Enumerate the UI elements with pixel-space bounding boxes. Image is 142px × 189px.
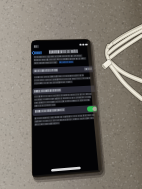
button[interactable]: Photo of an iPhone battery settings scre… [0, 0, 142, 189]
